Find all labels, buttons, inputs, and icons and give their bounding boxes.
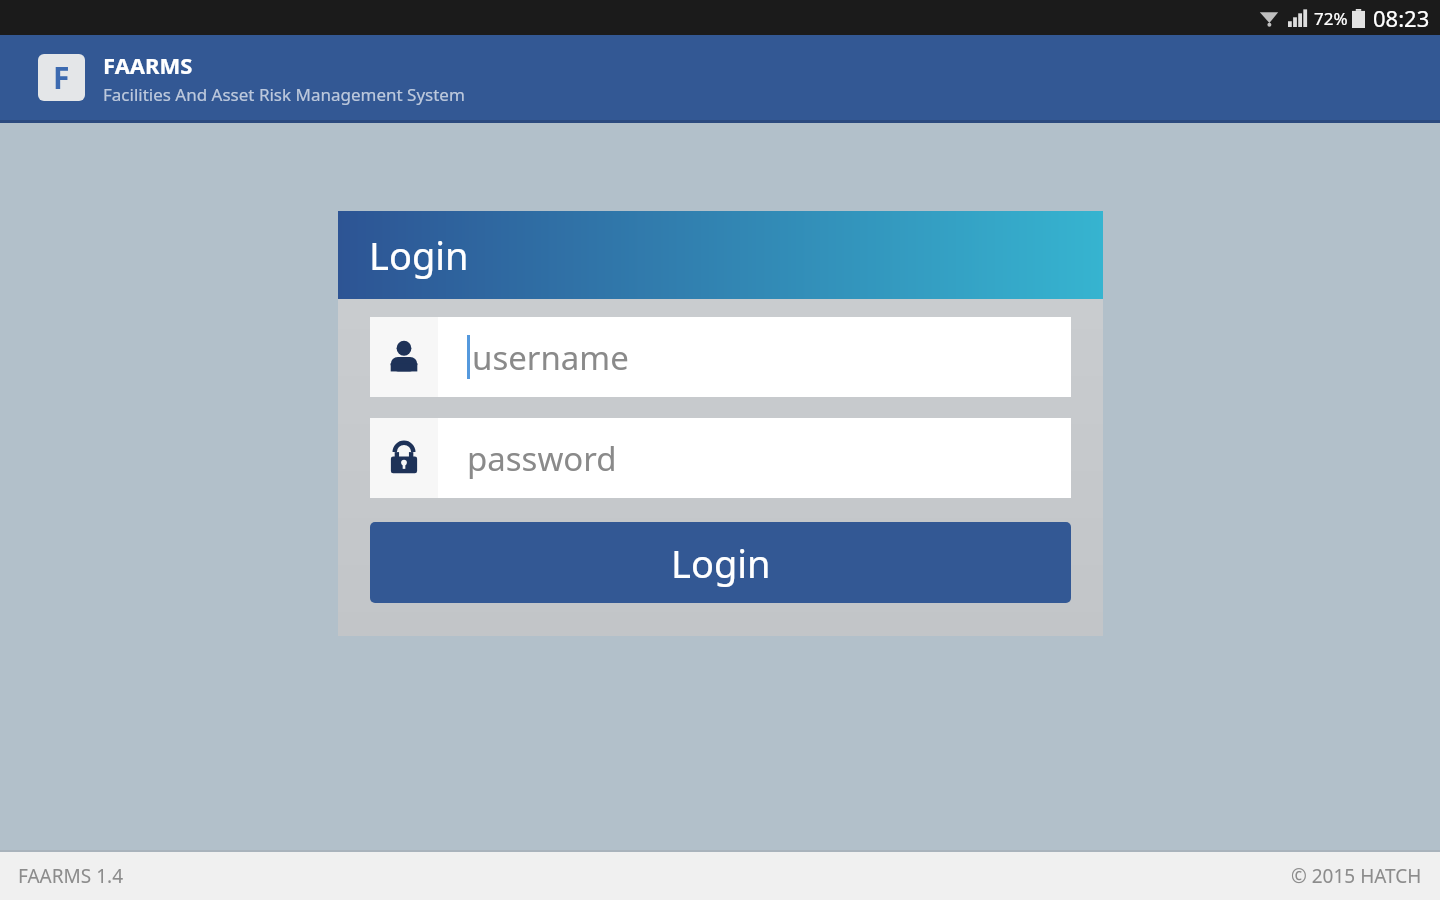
staticText: Login — [369, 229, 469, 281]
staticText: © 2015 HATCH — [1291, 863, 1422, 889]
button[interactable]: Login — [370, 522, 1071, 603]
staticText: 72% — [1314, 7, 1348, 30]
staticText: Login — [671, 537, 771, 589]
button[interactable]: Password — [370, 418, 1071, 498]
button[interactable]: Username — [370, 317, 1071, 397]
staticText: Facilities And Asset Risk Management Sys… — [103, 83, 465, 106]
staticText: F — [53, 57, 70, 98]
staticText: FAARMS 1.4 — [18, 863, 124, 889]
staticText: FAARMS — [103, 50, 193, 80]
staticText: password — [467, 436, 617, 481]
staticText: username — [472, 335, 629, 380]
staticText: 08:23 — [1373, 3, 1430, 33]
